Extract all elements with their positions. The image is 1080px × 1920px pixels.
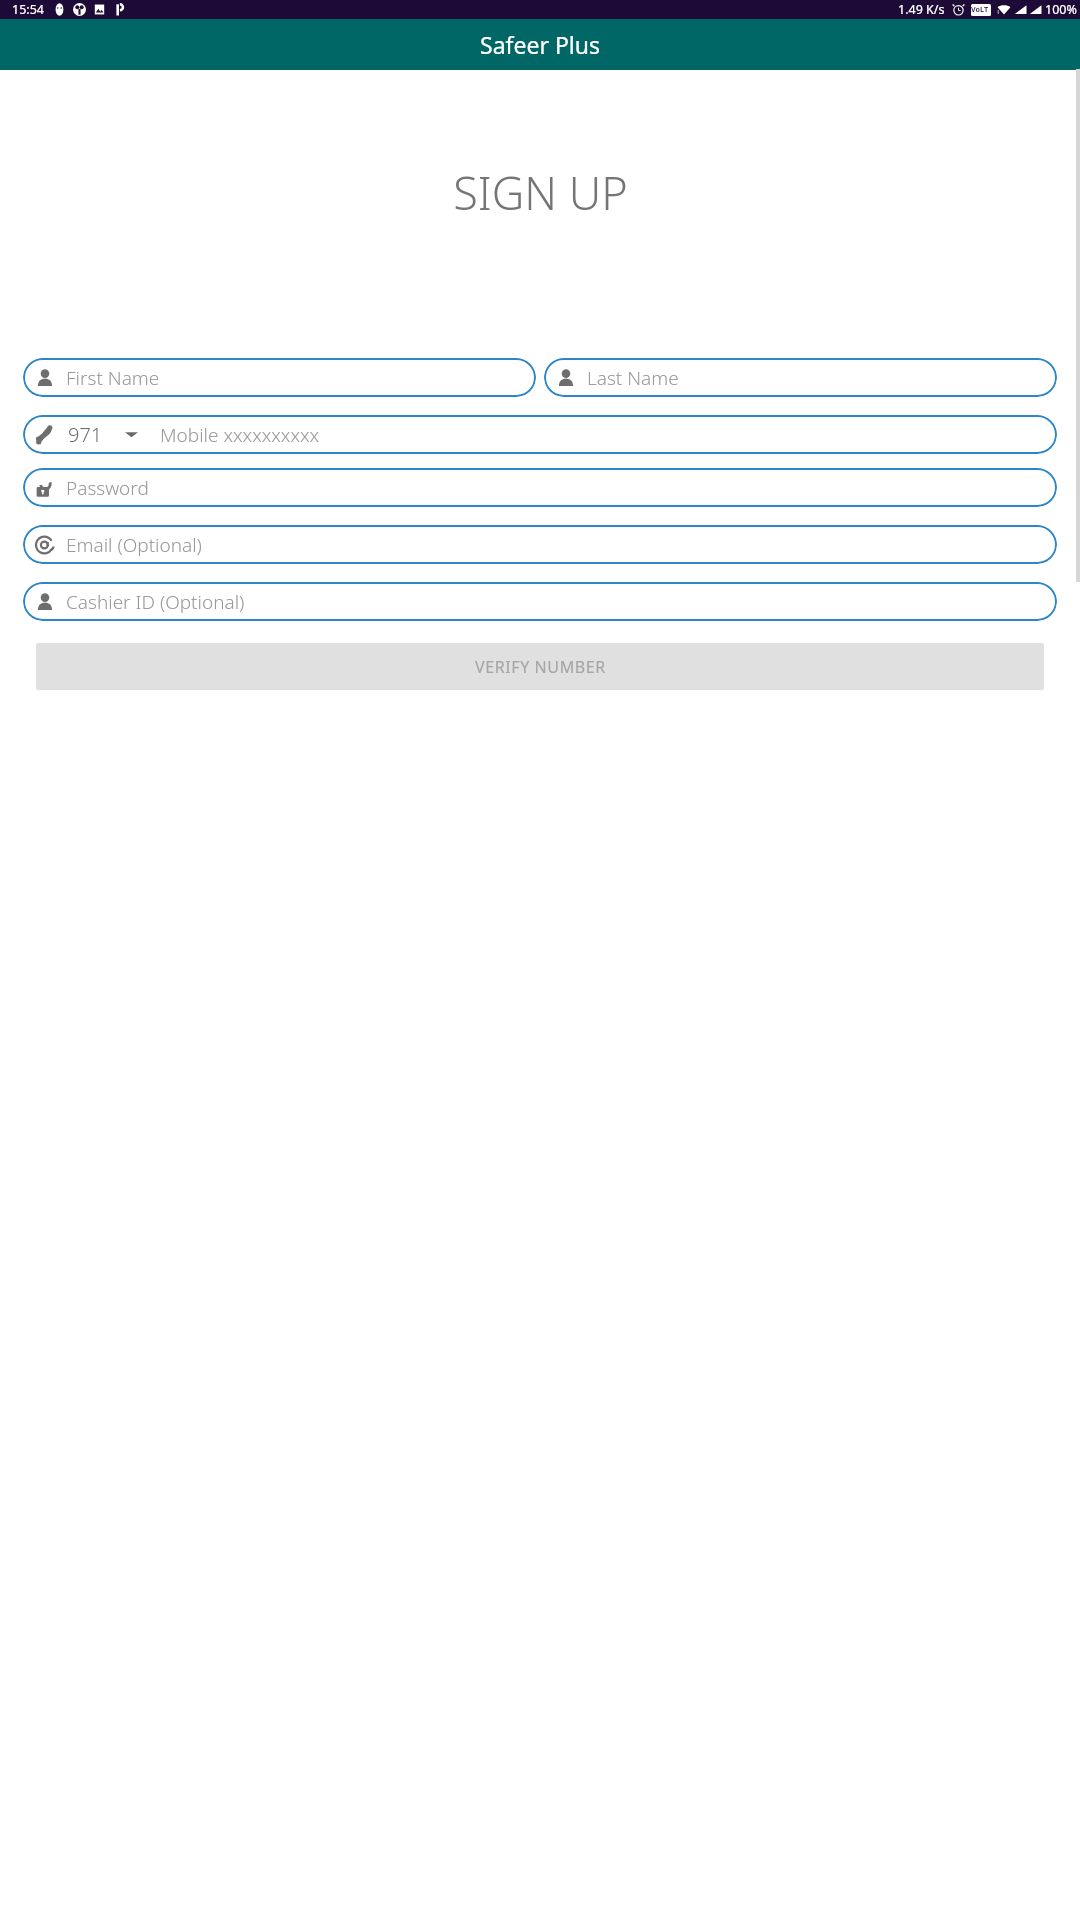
staticText: 100% (1045, 1, 1077, 18)
staticText: 1.49 K/s (898, 1, 945, 18)
button[interactable]: VERIFY NUMBER (36, 643, 1044, 690)
staticText: 971 (68, 421, 103, 448)
staticText: Cashier ID (Optional) (66, 589, 245, 615)
button[interactable]: First Name (23, 358, 536, 397)
button[interactable]: Password (23, 468, 1057, 507)
button[interactable]: 971 (23, 415, 1057, 454)
staticText: 15:54 (12, 1, 44, 18)
staticText: Safeer Plus (480, 29, 600, 60)
other: Select country code (125, 430, 138, 439)
button[interactable]: Email (Optional) (23, 525, 1057, 564)
button[interactable]: Last Name (544, 358, 1057, 397)
staticText: First Name (66, 365, 160, 391)
button[interactable]: Cashier ID (Optional) (23, 582, 1057, 621)
staticText: VoLTE (971, 4, 991, 16)
staticText: Mobile xxxxxxxxxx (160, 422, 320, 448)
staticText: Password (66, 475, 149, 501)
staticText: Email (Optional) (66, 532, 202, 558)
staticText: VERIFY NUMBER (475, 656, 606, 678)
staticText: SIGN UP (453, 162, 628, 223)
staticText: Last Name (587, 365, 679, 391)
